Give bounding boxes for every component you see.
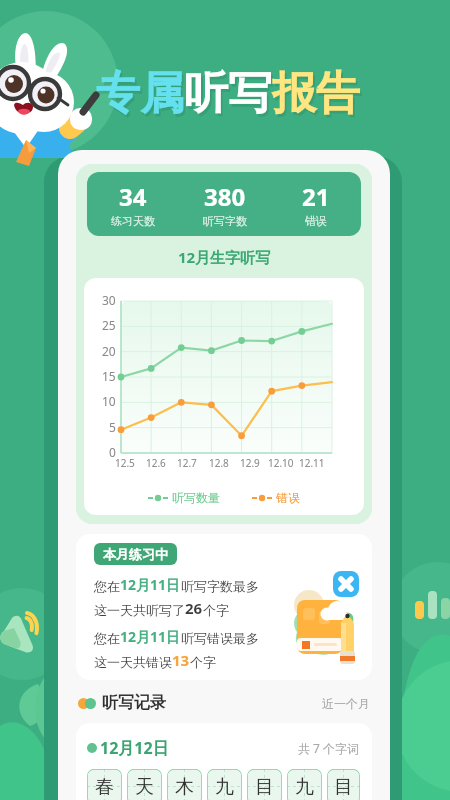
staticText: 12.6 — [146, 456, 166, 470]
staticText: 听写 — [186, 69, 274, 124]
staticText: 报告 — [272, 66, 360, 121]
staticText: 您在 — [94, 630, 120, 646]
staticText: 12.7 — [177, 456, 197, 470]
staticText: 专属 — [96, 66, 184, 121]
staticText: 目 — [255, 775, 274, 799]
staticText: 380 — [204, 180, 246, 213]
button[interactable]: 34 — [87, 180, 179, 228]
staticText: 近一个月 — [322, 696, 370, 711]
staticText: 26 — [185, 598, 203, 618]
button[interactable]: 错误 — [252, 490, 300, 505]
staticText: 5 — [109, 419, 116, 435]
button[interactable]: 380 — [179, 180, 270, 228]
staticText: 报告 — [274, 69, 362, 124]
staticText: 12.11 — [299, 456, 325, 470]
staticText: 听写字数最多 — [181, 578, 259, 594]
button[interactable]: 九 — [207, 769, 242, 800]
staticText: 这一天共错误 — [94, 654, 172, 670]
staticText: 34 — [119, 180, 147, 213]
staticText: 听写 — [184, 66, 272, 121]
staticText: 错误 — [305, 214, 327, 228]
staticText: 12月11日 — [120, 627, 181, 646]
staticText: 13 — [172, 650, 190, 670]
staticText: 10 — [102, 393, 116, 409]
staticText: 听写数量 — [172, 490, 220, 505]
staticText: 个字 — [203, 602, 229, 618]
staticText: 这一天共听写了 — [94, 602, 185, 618]
button[interactable]: 目 — [247, 769, 282, 800]
staticText: 您在 — [94, 578, 120, 594]
staticText: 30 — [102, 292, 116, 308]
button[interactable]: 听写数量 — [148, 490, 220, 505]
staticText: 0 — [109, 444, 116, 460]
button[interactable]: 春 — [87, 769, 122, 800]
staticText: 25 — [102, 317, 116, 333]
staticText: 12月11日 — [120, 575, 181, 594]
staticText: 12.5 — [115, 456, 135, 470]
staticText: 错误 — [276, 490, 300, 505]
staticText: 12.10 — [268, 456, 294, 470]
staticText: 专属 — [98, 69, 186, 124]
button[interactable]: 天 — [127, 769, 162, 800]
staticText: 听写错误最多 — [181, 630, 259, 646]
button[interactable]: 九 — [287, 769, 322, 800]
button[interactable]: 目 — [327, 769, 360, 800]
button[interactable]: 21 — [270, 180, 361, 228]
button[interactable]: 木 — [167, 769, 202, 800]
staticText: 木 — [175, 775, 194, 799]
staticText: 12.9 — [240, 456, 260, 470]
staticText: 21 — [302, 180, 330, 213]
staticText: 12.8 — [209, 456, 229, 470]
staticText: 听写字数 — [203, 214, 247, 228]
staticText: 春 — [95, 775, 114, 799]
other: Statistics — [412, 585, 450, 625]
staticText: 九 — [215, 775, 234, 799]
staticText: 本月练习中 — [103, 546, 168, 562]
staticText: 天 — [135, 775, 154, 799]
staticText: 九 — [295, 775, 314, 799]
staticText: 共 7 个字词 — [298, 740, 360, 756]
staticText: 20 — [102, 343, 116, 359]
other: Sound — [0, 612, 42, 654]
staticText: 目 — [334, 775, 353, 799]
staticText: 练习天数 — [111, 214, 155, 228]
staticText: 12月生字听写 — [76, 247, 372, 267]
staticText: 个字 — [190, 654, 216, 670]
staticText: 听写记录 — [102, 693, 166, 713]
staticText: 12月12日 — [100, 737, 169, 759]
staticText: 15 — [102, 368, 116, 384]
